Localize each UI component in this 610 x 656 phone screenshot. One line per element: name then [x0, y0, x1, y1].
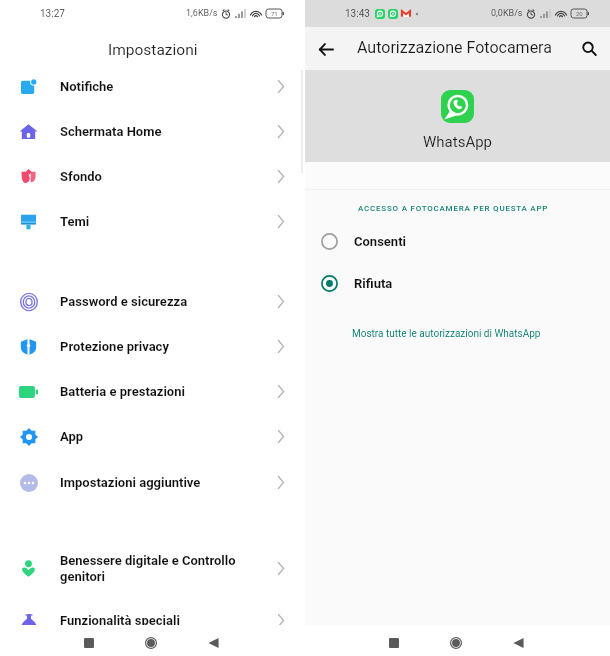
- staticText: Consenti: [354, 234, 406, 249]
- staticText: 13:27: [40, 8, 65, 20]
- button[interactable]: Impostazioni aggiuntive: [0, 460, 305, 505]
- staticText: Mostra tutte le autorizzazioni di WhatsA…: [352, 328, 541, 340]
- button[interactable]: Consenti: [305, 226, 610, 256]
- staticText: 20: [576, 10, 583, 17]
- button[interactable]: Sfondo: [0, 154, 305, 199]
- button[interactable]: Search: [574, 34, 604, 64]
- button[interactable]: Benessere digitale e Controllo genitori: [0, 546, 305, 591]
- button[interactable]: App: [0, 414, 305, 459]
- staticText: Notifiche: [60, 79, 277, 94]
- staticText: 1,6KB/s: [186, 8, 218, 19]
- button[interactable]: Password e sicurezza: [0, 279, 305, 324]
- staticText: Impostazioni: [108, 41, 198, 59]
- staticText: Temi: [60, 214, 277, 229]
- button[interactable]: Home: [425, 627, 487, 656]
- button[interactable]: Protezione privacy: [0, 324, 305, 369]
- staticText: Benessere digitale e Controllo genitori: [60, 553, 277, 584]
- button[interactable]: Mostra tutte le autorizzazioni di WhatsA…: [305, 325, 553, 343]
- staticText: App: [60, 429, 277, 444]
- button[interactable]: Recent apps: [58, 627, 120, 656]
- staticText: Schermata Home: [60, 124, 277, 139]
- staticText: Impostazioni aggiuntive: [60, 475, 277, 490]
- button[interactable]: Notifiche: [0, 64, 305, 109]
- button[interactable]: Back: [182, 627, 244, 656]
- button[interactable]: Temi: [0, 199, 305, 244]
- staticText: Password e sicurezza: [60, 294, 277, 309]
- staticText: 71: [271, 10, 278, 17]
- button[interactable]: Batteria e prestazioni: [0, 369, 305, 414]
- staticText: 13:43: [345, 8, 370, 20]
- button[interactable]: Schermata Home: [0, 109, 305, 154]
- button[interactable]: Home: [120, 627, 182, 656]
- button[interactable]: Back: [487, 627, 549, 656]
- staticText: Batteria e prestazioni: [60, 384, 277, 399]
- staticText: Protezione privacy: [60, 339, 277, 354]
- staticText: 0,0KB/s: [491, 8, 523, 19]
- staticText: Rifiuta: [354, 276, 393, 291]
- button[interactable]: Back: [310, 33, 342, 65]
- staticText: Funzionalità speciali: [60, 613, 277, 628]
- staticText: WhatsApp: [423, 133, 493, 151]
- staticText: Autorizzazione Fotocamera: [357, 38, 552, 57]
- button[interactable]: Recent apps: [363, 627, 425, 656]
- staticText: ACCESSO A FOTOCAMERA PER QUESTA APP: [358, 204, 549, 213]
- staticText: Sfondo: [60, 169, 277, 184]
- button[interactable]: Rifiuta: [305, 268, 610, 298]
- button[interactable]: Funzionalità speciali: [0, 598, 305, 643]
